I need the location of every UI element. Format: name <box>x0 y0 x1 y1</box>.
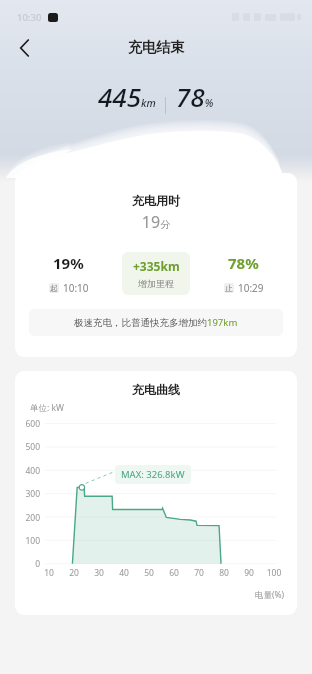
staticText: 445km <box>98 79 156 114</box>
staticText: 80 <box>212 567 236 579</box>
staticText: 止 <box>225 283 233 293</box>
staticText: 90 <box>237 567 261 579</box>
staticText: 50 <box>137 567 161 579</box>
staticText: 极速充电，比普通快充多增加约197km <box>74 316 238 329</box>
staticText: 78% <box>228 253 259 273</box>
staticText: 30 <box>87 567 111 579</box>
staticText: 充电曲线 <box>15 382 297 397</box>
staticText: 400 <box>16 465 40 477</box>
staticText: 10:10 <box>63 281 89 295</box>
button[interactable]: MAX: 326.8kW <box>121 468 185 481</box>
staticText: 100 <box>16 535 40 547</box>
staticText: 19分 <box>15 211 297 233</box>
staticText: 10:30 <box>17 11 42 24</box>
staticText: 电量(%) <box>255 589 285 601</box>
staticText: +335km <box>133 258 180 274</box>
staticText: 充电用时 <box>15 193 297 208</box>
staticText: 19% <box>53 253 84 273</box>
staticText: 20 <box>62 567 86 579</box>
staticText: 100 <box>262 567 286 579</box>
staticText: 40 <box>112 567 136 579</box>
staticText: 60 <box>162 567 186 579</box>
staticText: 0 <box>16 558 40 570</box>
staticText: MAX: 326.8kW <box>121 468 185 481</box>
staticText: 增加里程 <box>138 278 174 289</box>
staticText: 单位: kW <box>30 402 64 414</box>
staticText: 78% <box>176 79 214 114</box>
staticText: 70 <box>187 567 211 579</box>
staticText: 10:29 <box>238 281 264 295</box>
staticText: 10 <box>37 567 61 579</box>
staticText: 充电结束 <box>128 39 184 57</box>
button[interactable]: Back <box>9 34 39 61</box>
staticText: 500 <box>16 441 40 453</box>
staticText: 600 <box>16 418 40 430</box>
staticText: 300 <box>16 488 40 500</box>
staticText: 200 <box>16 512 40 524</box>
staticText: 起 <box>50 283 58 293</box>
